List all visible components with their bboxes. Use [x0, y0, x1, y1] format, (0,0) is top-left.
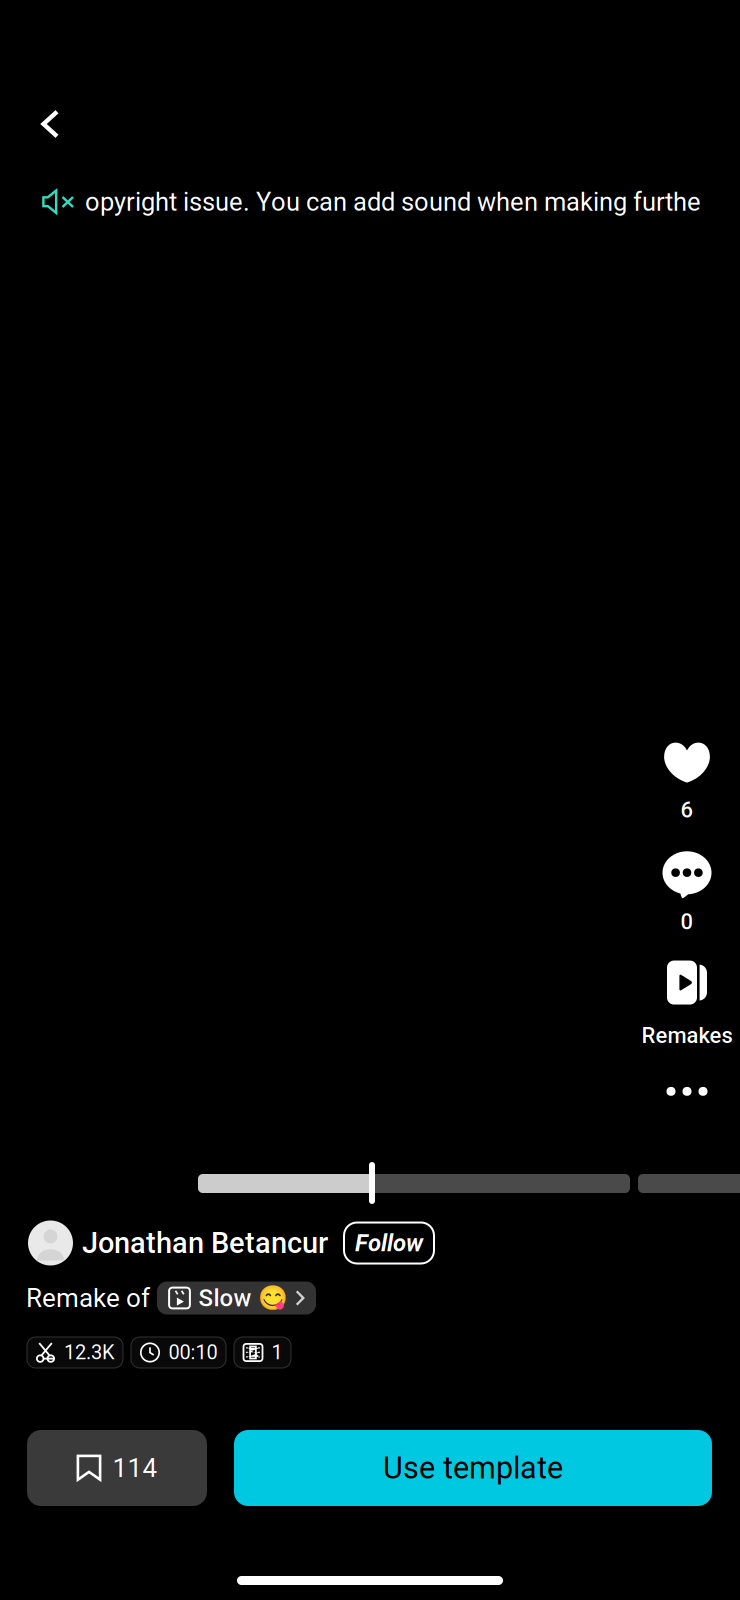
- button[interactable]: Remakes: [607, 960, 740, 1048]
- staticText: 114: [112, 1453, 157, 1483]
- button[interactable]: Follow: [344, 1222, 434, 1263]
- staticText: 6: [680, 797, 693, 823]
- staticText: Use template: [383, 1450, 563, 1486]
- staticText: Remake of: [26, 1283, 150, 1313]
- button[interactable]: Comments, 0: [607, 851, 740, 935]
- staticText: Follow: [355, 1229, 423, 1257]
- staticText: 12.3K: [64, 1341, 115, 1364]
- button[interactable]: 12.3K: [27, 1337, 123, 1368]
- button[interactable]: 00:10: [131, 1337, 226, 1368]
- button[interactable]: Slow 😋: [157, 1281, 316, 1314]
- staticText: 00:10: [168, 1341, 217, 1364]
- button[interactable]: 114: [27, 1430, 207, 1506]
- staticText: 1: [271, 1341, 282, 1364]
- button[interactable]: Like, 6 likes: [607, 742, 740, 823]
- staticText: Remakes: [641, 1023, 732, 1048]
- staticText: Slow 😋: [198, 1284, 287, 1312]
- button[interactable]: Use template: [234, 1430, 712, 1506]
- button[interactable]: Back: [18, 92, 82, 156]
- staticText: opyright issue. You can add sound when m…: [85, 187, 701, 217]
- staticText: 0: [680, 909, 693, 935]
- button[interactable]: More options: [607, 1085, 740, 1097]
- button[interactable]: 1: [234, 1337, 291, 1368]
- staticText: Jonathan Betancur: [82, 1226, 328, 1260]
